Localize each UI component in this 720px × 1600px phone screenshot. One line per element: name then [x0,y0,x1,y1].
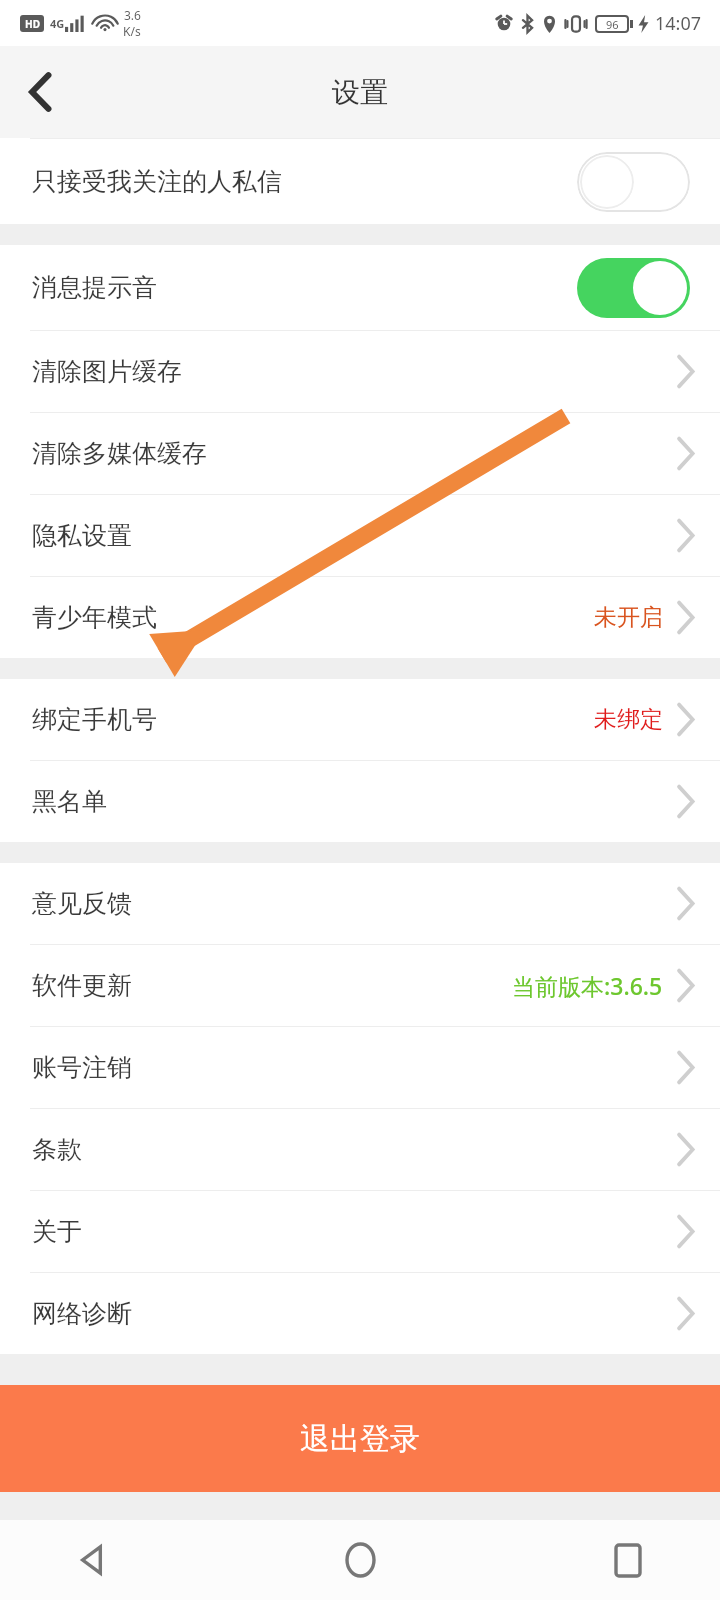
staticText: HD [25,17,40,31]
staticText: 清除多媒体缓存 [32,438,207,469]
button[interactable]: Toggle off [577,152,690,212]
button[interactable]: 黑名单 [0,761,720,842]
button[interactable]: 清除图片缓存 [0,331,720,412]
staticText: 未开启 [594,603,663,632]
button[interactable]: 账号注销 [0,1027,720,1108]
button[interactable]: 软件更新 [0,945,720,1026]
staticText: 账号注销 [32,1052,132,1083]
staticText: 黑名单 [32,786,107,817]
staticText: 青少年模式 [32,602,157,633]
button[interactable]: Toggle on [577,258,690,318]
staticText: 隐私设置 [32,520,132,551]
staticText: 关于 [32,1216,82,1247]
staticText: 4G [50,16,65,31]
staticText: 清除图片缓存 [32,356,182,387]
staticText: 未绑定 [594,705,663,734]
button[interactable]: 退出登录 [0,1385,720,1492]
button[interactable]: 只接受我关注的人私信 [0,139,720,224]
staticText: 软件更新 [32,970,132,1001]
staticText: 只接受我关注的人私信 [32,166,282,197]
button[interactable]: 网络诊断 [0,1273,720,1354]
staticText: 14:07 [655,11,702,36]
button[interactable]: 条款 [0,1109,720,1190]
button[interactable]: Back [0,46,80,138]
staticText: 消息提示音 [32,272,157,303]
staticText: 当前版本:3.6.5 [512,970,663,1001]
staticText: 3.6 [124,7,141,23]
staticText: 设置 [332,75,388,110]
button[interactable]: 隐私设置 [0,495,720,576]
button[interactable]: 清除多媒体缓存 [0,413,720,494]
button[interactable]: 消息提示音 [0,245,720,330]
button[interactable]: 绑定手机号 [0,679,720,760]
staticText: K/s [123,23,141,39]
button[interactable]: 关于 [0,1191,720,1272]
button[interactable]: 青少年模式 [0,577,720,658]
staticText: 96 [606,17,619,32]
button[interactable]: 意见反馈 [0,863,720,944]
staticText: 条款 [32,1134,82,1165]
button[interactable]: Recents [596,1528,660,1592]
button[interactable]: Home [328,1528,392,1592]
button[interactable]: Back [60,1528,124,1592]
staticText: 绑定手机号 [32,704,157,735]
staticText: 网络诊断 [32,1298,132,1329]
staticText: 意见反馈 [32,888,132,919]
staticText: 退出登录 [300,1420,420,1458]
